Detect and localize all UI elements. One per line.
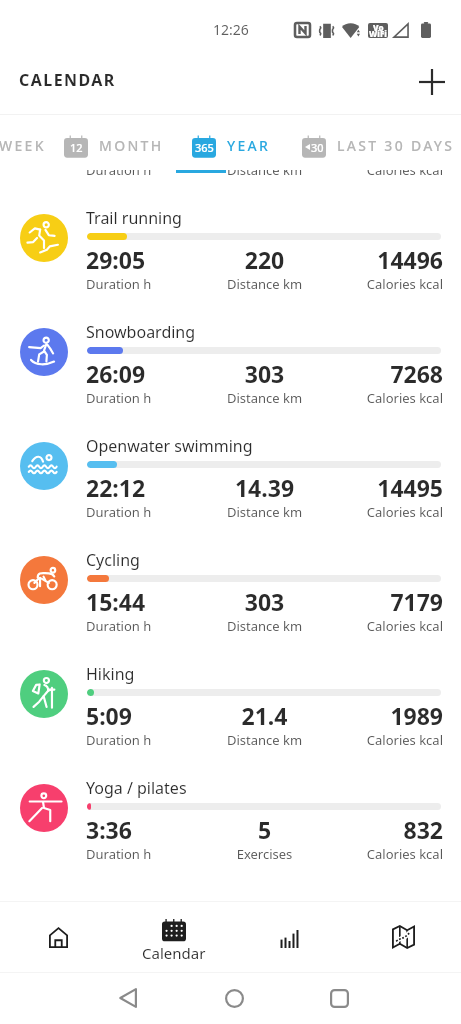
button[interactable]: Cross-country skiing xyxy=(0,80,461,194)
staticText: 12:26 xyxy=(213,20,249,39)
button[interactable]: Map xyxy=(346,901,461,973)
staticText: Calories kcal xyxy=(324,731,443,749)
button[interactable]: Trail running xyxy=(0,194,461,308)
staticText: Calories kcal xyxy=(324,275,443,293)
button[interactable]: Statistics xyxy=(231,901,346,973)
staticText: Yoga / pilates xyxy=(86,777,187,799)
staticText: 220 xyxy=(205,244,324,275)
staticText: Calendar xyxy=(142,943,206,963)
staticText: 12 xyxy=(70,140,83,155)
staticText: Vo xyxy=(373,23,384,33)
staticText: 21.4 xyxy=(205,700,324,731)
staticText: Distance km xyxy=(205,503,324,521)
staticText: Duration h xyxy=(86,161,205,179)
staticText: 30 xyxy=(311,140,324,155)
staticText: Calories kcal xyxy=(324,845,443,863)
staticText: 5 xyxy=(205,814,324,845)
staticText: YEAR xyxy=(227,136,271,155)
staticText: 22:12 xyxy=(86,472,205,503)
button[interactable]: Add activity xyxy=(410,60,454,104)
button[interactable]: Back xyxy=(108,978,148,1018)
staticText: Openwater swimming xyxy=(86,435,253,457)
button[interactable]: Home xyxy=(214,978,254,1018)
button[interactable]: 12 xyxy=(48,119,180,171)
button[interactable]: 30 xyxy=(286,119,461,171)
staticText: Cycling xyxy=(86,549,140,571)
staticText: Calories kcal xyxy=(324,617,443,635)
staticText: CALENDAR xyxy=(19,69,116,91)
staticText: 3:36 xyxy=(86,814,205,845)
staticText: Duration h xyxy=(86,503,205,521)
staticText: Distance km xyxy=(205,731,324,749)
button[interactable]: Openwater swimming xyxy=(0,422,461,536)
staticText: 7268 xyxy=(324,358,443,389)
button[interactable]: Recent apps xyxy=(319,978,359,1018)
staticText: 1989 xyxy=(324,700,443,731)
staticText: MONTH xyxy=(99,136,164,155)
staticText: Duration h xyxy=(86,617,205,635)
staticText: Distance km xyxy=(205,275,324,293)
button[interactable]: Snowboarding xyxy=(0,308,461,422)
staticText: Trail running xyxy=(86,207,182,229)
staticText: WEEK xyxy=(0,136,46,155)
staticText: 7179 xyxy=(324,586,443,617)
staticText: Duration h xyxy=(86,845,205,863)
staticText: 31:02 xyxy=(86,130,205,161)
button[interactable]: Cycling xyxy=(0,536,461,650)
staticText: Hiking xyxy=(86,663,135,685)
staticText: Distance km xyxy=(205,617,324,635)
staticText: Duration h xyxy=(86,389,205,407)
staticText: 26:09 xyxy=(86,358,205,389)
staticText: 14495 xyxy=(324,472,443,503)
button[interactable]: Yoga / pilates xyxy=(0,764,461,878)
staticText: 29:05 xyxy=(86,244,205,275)
staticText: 832 xyxy=(324,814,443,845)
button[interactable]: Home xyxy=(0,901,116,973)
staticText: Duration h xyxy=(86,731,205,749)
button[interactable]: Hiking xyxy=(0,650,461,764)
button[interactable]: 365 xyxy=(176,119,287,171)
staticText: Snowboarding xyxy=(86,321,196,343)
staticText: WiFi xyxy=(369,28,387,38)
staticText: Calories kcal xyxy=(324,161,443,179)
staticText: 14496 xyxy=(324,244,443,275)
staticText: 14.39 xyxy=(205,472,324,503)
button[interactable]: Calendar xyxy=(116,901,231,973)
staticText: Distance km xyxy=(205,161,324,179)
staticText: Distance km xyxy=(205,389,324,407)
staticText: 303 xyxy=(205,586,324,617)
staticText: 15:44 xyxy=(86,586,205,617)
staticText: Calories kcal xyxy=(324,503,443,521)
staticText: LAST 30 DAYS xyxy=(337,136,455,155)
staticText: Duration h xyxy=(86,275,205,293)
staticText: 365 xyxy=(195,140,214,155)
button[interactable]: 7 xyxy=(0,119,62,171)
staticText: Exercises xyxy=(205,845,324,863)
staticText: 5:09 xyxy=(86,700,205,731)
staticText: 412 xyxy=(205,130,324,161)
staticText: Calories kcal xyxy=(324,389,443,407)
staticText: 303 xyxy=(205,358,324,389)
staticText: 18210 xyxy=(324,130,443,161)
